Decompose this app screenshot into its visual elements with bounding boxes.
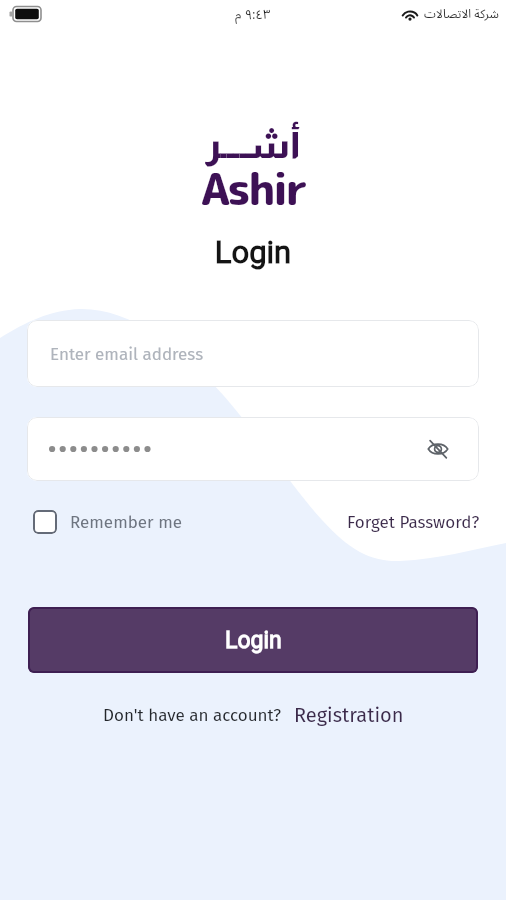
- staticText: Enter email address: [50, 344, 204, 364]
- staticText: Don't have an account?: [103, 705, 281, 725]
- staticText: Ashir: [0, 158, 506, 219]
- button[interactable]: Login: [28, 607, 478, 673]
- staticText: أشــــر: [0, 125, 506, 165]
- button[interactable]: Remember me: [33, 510, 182, 534]
- staticText: Login: [0, 234, 506, 270]
- button[interactable]: Show password: [423, 434, 453, 464]
- button[interactable]: Forget Password?: [347, 512, 480, 532]
- staticText: Remember me: [70, 512, 182, 532]
- staticText: Login: [225, 627, 282, 654]
- staticText: شركة الاتصالات: [424, 2, 499, 27]
- button[interactable]: Show password: [27, 417, 479, 481]
- button[interactable]: Enter email address: [27, 320, 479, 387]
- button[interactable]: Registration: [294, 703, 404, 727]
- staticText: ٩:٤٣ م: [235, 1, 271, 28]
